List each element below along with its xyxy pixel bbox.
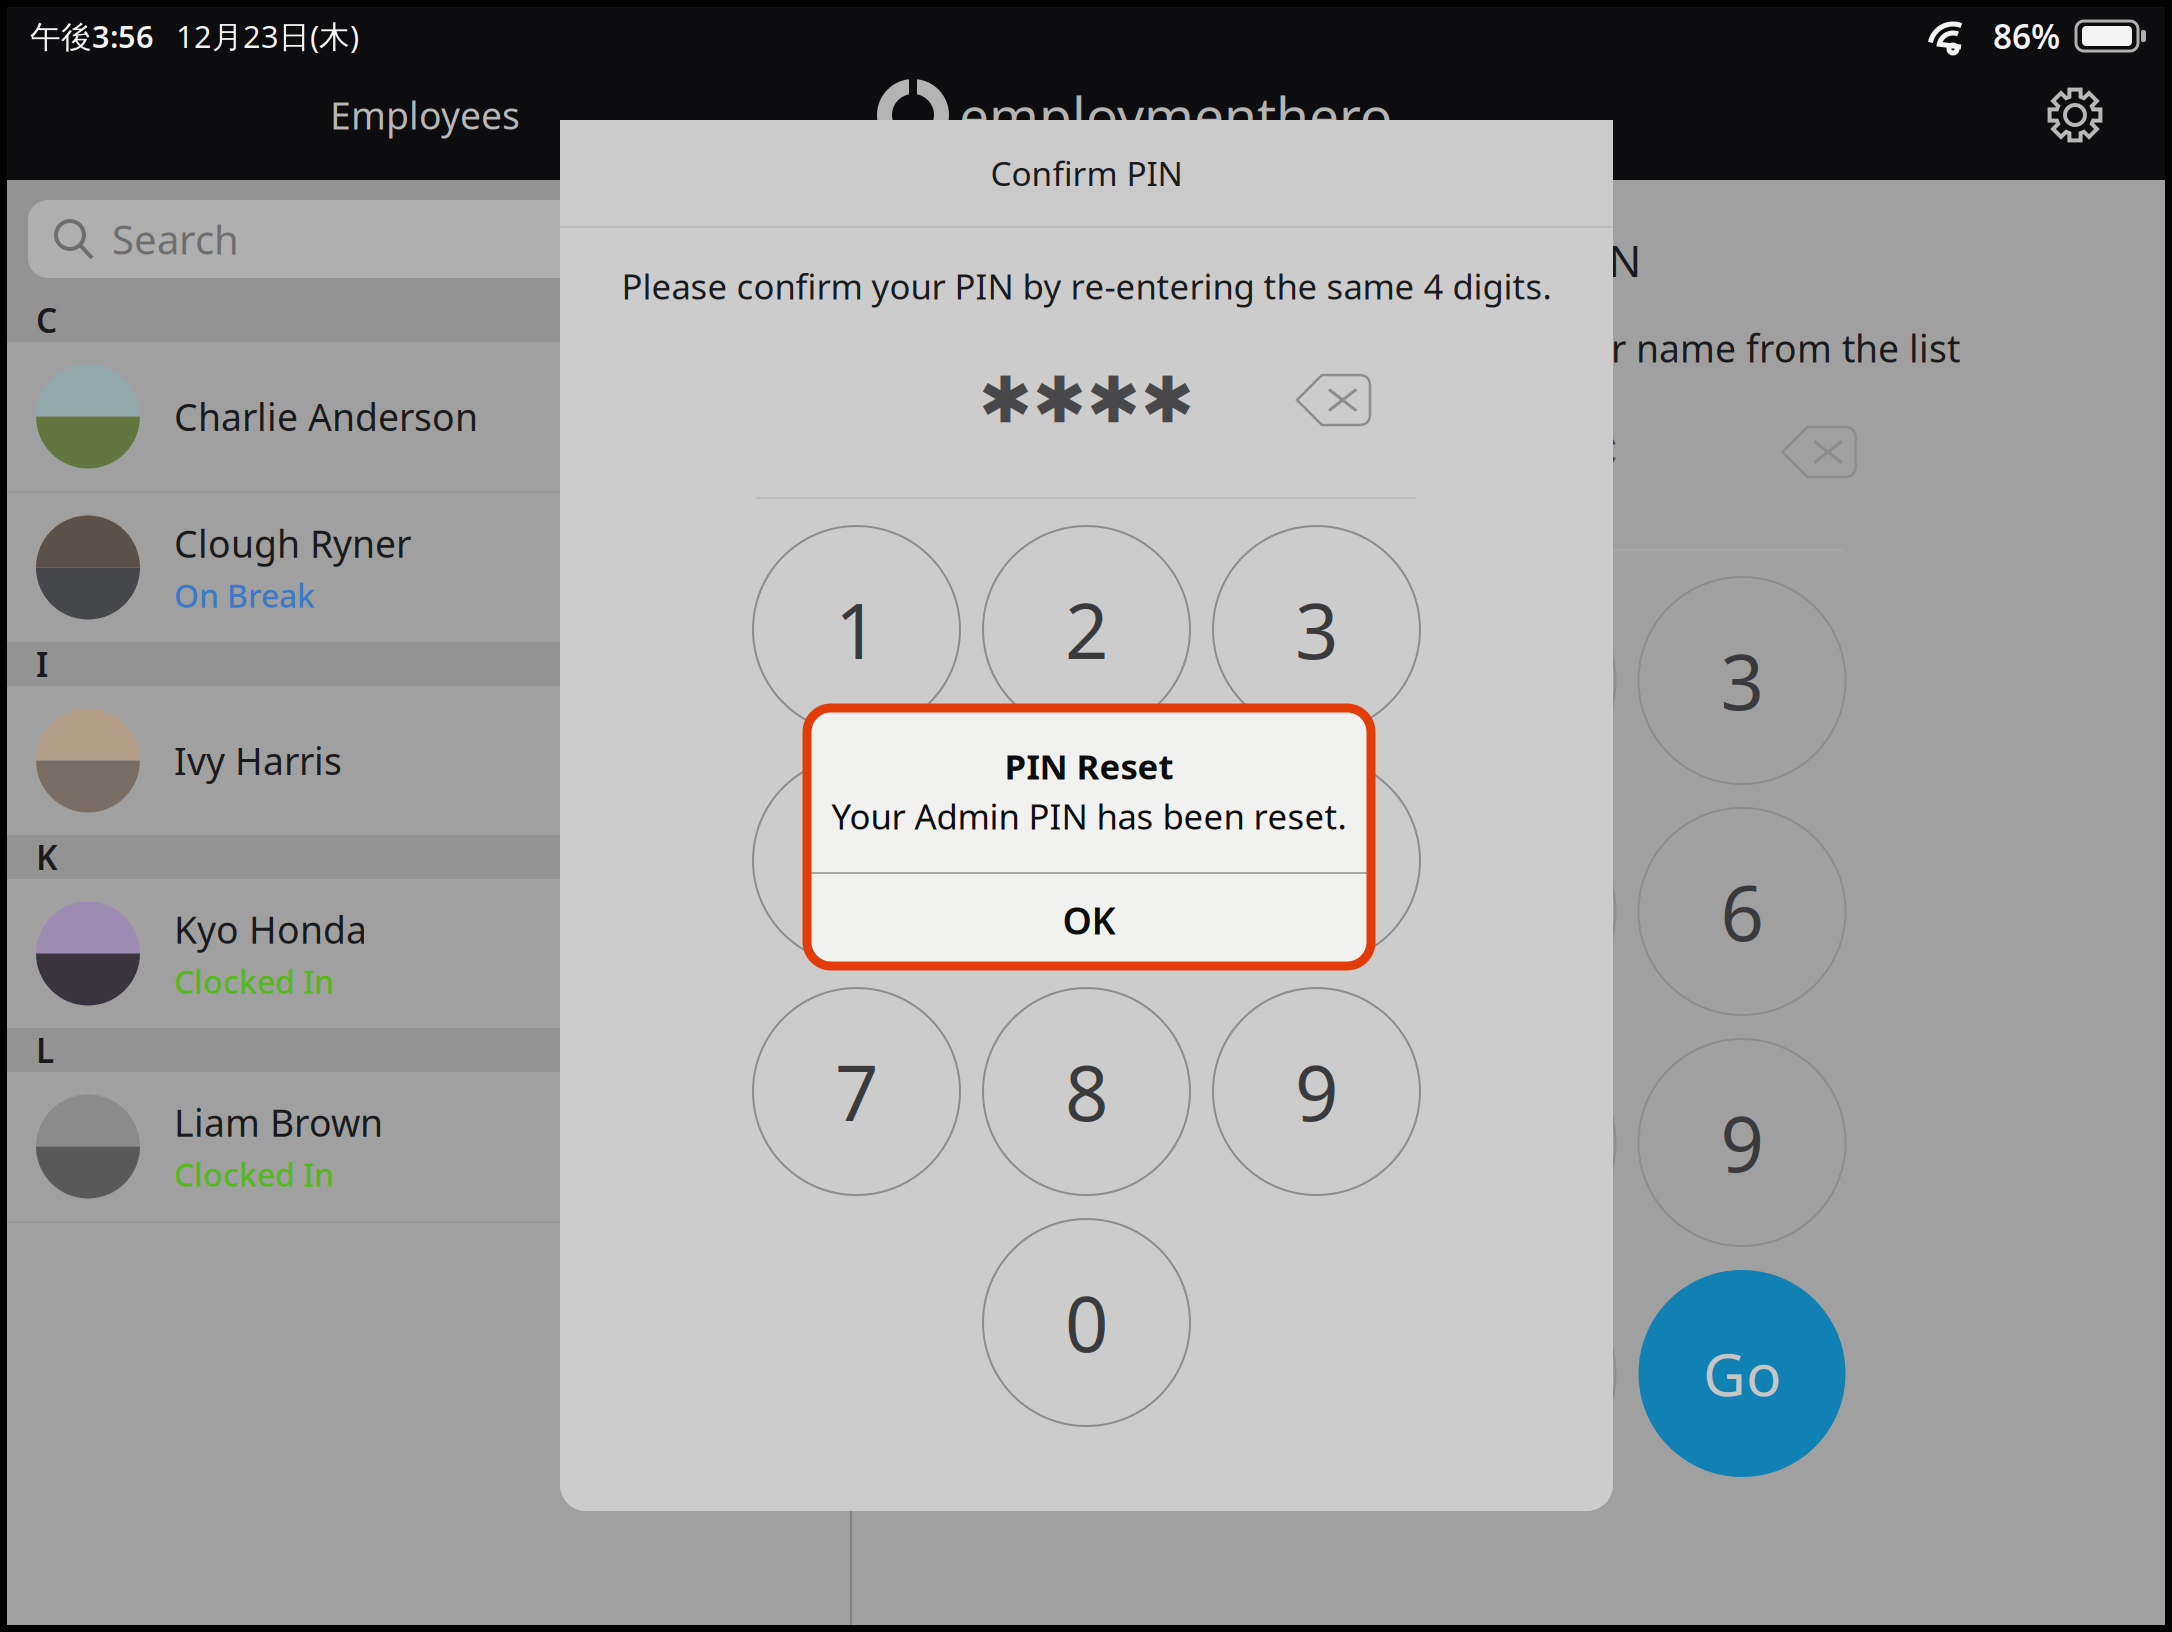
staticText: I <box>36 642 48 686</box>
button[interactable]: 2 <box>1408 577 1615 784</box>
staticText: K <box>36 835 58 879</box>
button[interactable]: 8 <box>983 988 1190 1195</box>
staticText: Clocked In <box>174 1153 334 1195</box>
staticText: Enter your PIN <box>1340 231 1641 289</box>
staticText: Your Admin PIN has been reset. <box>831 793 1346 839</box>
button[interactable]: 2 <box>983 526 1190 733</box>
button[interactable]: 4 <box>1178 808 1385 1015</box>
staticText: ✱✱✱✱ <box>978 364 1194 436</box>
button[interactable]: Charlie Anderson <box>0 342 850 491</box>
staticText: employmenthero <box>959 80 1392 150</box>
staticText: 1 <box>1260 630 1303 731</box>
staticText: 8 <box>1065 1041 1108 1142</box>
staticText: Employees <box>330 90 520 140</box>
button[interactable]: 7 <box>753 988 960 1195</box>
staticText: 3 <box>1295 579 1338 680</box>
staticText: Clough Ryner <box>174 518 411 568</box>
staticText: or select your name from the list <box>1387 323 1960 373</box>
button[interactable]: Employees <box>0 72 850 158</box>
button[interactable]: 4 <box>753 757 960 964</box>
button[interactable]: OK <box>807 874 1371 966</box>
button[interactable]: 7 <box>1178 1039 1385 1246</box>
button[interactable]: Go <box>1638 1270 1845 1477</box>
button[interactable]: Search <box>28 200 818 278</box>
staticText: 6 <box>1295 810 1338 911</box>
button[interactable]: Delete <box>1295 373 1371 426</box>
button[interactable]: 1 <box>753 526 960 733</box>
staticText: 6 <box>1720 861 1763 962</box>
staticText: Confirm PIN <box>990 151 1182 195</box>
button[interactable]: 0 <box>1408 1270 1615 1477</box>
button[interactable]: 3 <box>1213 526 1420 733</box>
button[interactable]: 3 <box>1638 577 1845 784</box>
staticText: 2 <box>1065 579 1108 680</box>
staticText: Charlie Anderson <box>174 392 478 441</box>
staticText: 4 <box>1260 861 1303 962</box>
staticText: 1 <box>835 579 878 680</box>
staticText: Please confirm your PIN by re-entering t… <box>621 263 1551 309</box>
staticText: ✱✱✱✱ <box>1404 416 1620 488</box>
button[interactable]: 5 <box>1408 808 1615 1015</box>
staticText: OK <box>1062 895 1115 945</box>
button[interactable]: Clough Ryner <box>0 493 850 642</box>
staticText: 86% <box>1993 14 2060 58</box>
staticText: 午後3:56 <box>30 16 154 56</box>
staticText: 0 <box>1065 1272 1108 1373</box>
button[interactable]: 8 <box>1408 1039 1615 1246</box>
staticText: Clocked In <box>174 960 334 1002</box>
button[interactable]: Ivy Harris <box>0 686 850 835</box>
button[interactable]: 1 <box>1178 577 1385 784</box>
staticText: Ivy Harris <box>174 736 342 785</box>
button[interactable]: 6 <box>1638 808 1845 1015</box>
staticText: Go <box>1703 1334 1781 1412</box>
staticText: 9 <box>1720 1092 1763 1193</box>
staticText: 5 <box>1065 810 1108 911</box>
staticText: Liam Brown <box>174 1097 383 1147</box>
staticText: 4 <box>835 810 878 911</box>
staticText: 12月23日(木) <box>176 16 359 56</box>
staticText: PIN Reset <box>1004 743 1173 789</box>
staticText: 9 <box>1295 1041 1338 1142</box>
button[interactable]: 9 <box>1213 988 1420 1195</box>
staticText: L <box>36 1028 54 1072</box>
button[interactable]: 6 <box>1213 757 1420 964</box>
button[interactable]: 9 <box>1638 1039 1845 1246</box>
staticText: 7 <box>835 1041 878 1142</box>
button[interactable]: Settings <box>2046 86 2104 144</box>
button[interactable]: Kyo Honda <box>0 879 850 1028</box>
staticText: Search <box>112 212 239 265</box>
button[interactable]: 0 <box>983 1219 1190 1426</box>
staticText: Kyo Honda <box>174 904 367 954</box>
staticText: On Break <box>174 574 315 616</box>
staticText: C <box>36 298 57 342</box>
staticText: 3 <box>1720 630 1763 731</box>
button[interactable]: 5 <box>983 757 1190 964</box>
staticText: 7 <box>1260 1092 1303 1193</box>
button[interactable]: Delete <box>1781 425 1857 478</box>
button[interactable]: Liam Brown <box>0 1072 850 1221</box>
